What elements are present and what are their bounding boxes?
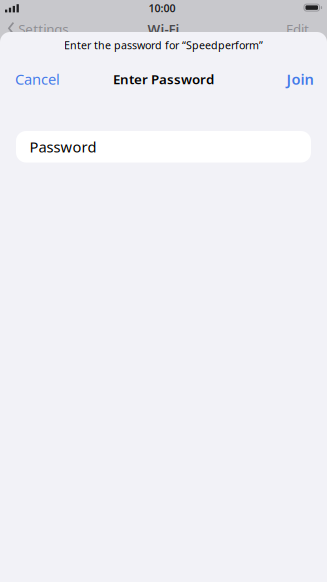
staticText: Edit: [286, 20, 309, 38]
staticText: Enter the password for “Speedperform”: [64, 38, 263, 52]
staticText: Cancel: [15, 69, 60, 89]
staticText: Join: [286, 69, 313, 89]
button[interactable]: Password: [16, 131, 311, 162]
staticText: Settings: [18, 20, 68, 38]
staticText: Wi-Fi: [147, 20, 179, 38]
button[interactable]: Join: [286, 69, 313, 89]
button[interactable]: Edit: [286, 20, 309, 38]
button[interactable]: Back to Settings: [8, 20, 68, 38]
staticText: 10:00: [149, 1, 176, 15]
staticText: Password: [29, 137, 96, 156]
button[interactable]: Cancel: [15, 69, 60, 89]
staticText: Enter Password: [113, 70, 214, 88]
